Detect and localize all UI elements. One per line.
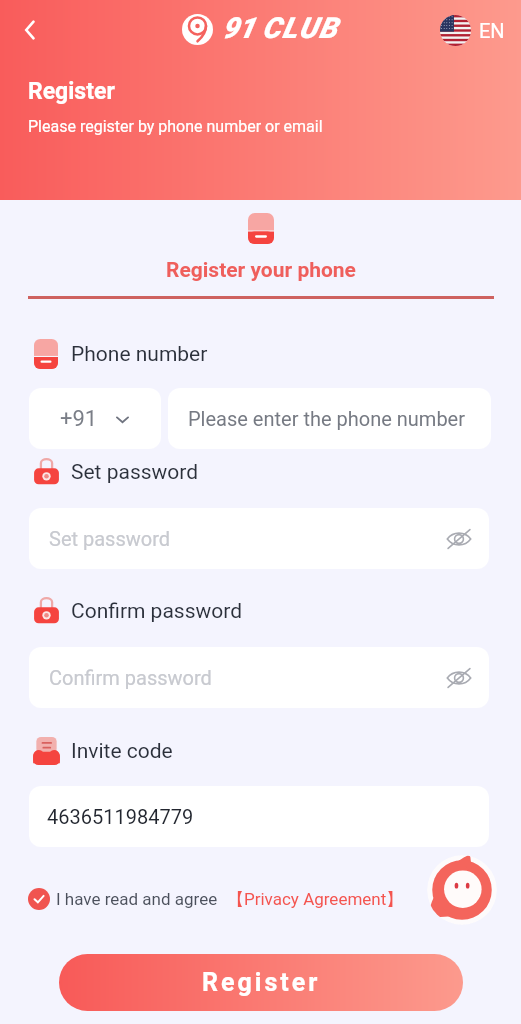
button[interactable]: Show password (444, 524, 474, 554)
staticText: Phone number (71, 342, 208, 367)
button[interactable]: Register your phone (166, 213, 356, 283)
button[interactable]: Register (59, 954, 463, 1011)
staticText: Register (202, 968, 321, 997)
button[interactable]: +91 (29, 388, 161, 449)
staticText: I have read and agree (56, 889, 218, 909)
staticText: 4636511984779 (47, 805, 194, 828)
button[interactable]: Back (9, 9, 51, 51)
staticText: Register your phone (166, 258, 356, 283)
staticText: Please register by phone number or email (28, 117, 323, 136)
button[interactable]: Customer support chat (427, 855, 497, 925)
staticText: Register (28, 78, 115, 105)
staticText: EN (479, 19, 505, 42)
button[interactable]: Confirm password (29, 647, 489, 708)
staticText: Set password (49, 527, 171, 550)
staticText: Confirm password (71, 599, 243, 624)
button[interactable]: EN (440, 15, 505, 46)
staticText: CLUB (262, 11, 339, 45)
staticText: Confirm password (49, 666, 212, 689)
staticText: Set password (71, 460, 199, 485)
button[interactable]: Set password (29, 508, 489, 569)
button[interactable]: 4636511984779 (29, 786, 489, 847)
staticText: Please enter the phone number (188, 407, 466, 430)
button[interactable]: 【Privacy Agreement】 (227, 889, 404, 910)
staticText: 91 (222, 11, 255, 45)
button[interactable]: Show password (444, 663, 474, 693)
staticText: Invite code (71, 739, 173, 764)
button[interactable] (28, 888, 50, 910)
button[interactable]: Please enter the phone number (168, 388, 491, 449)
staticText: +91 (60, 406, 98, 432)
